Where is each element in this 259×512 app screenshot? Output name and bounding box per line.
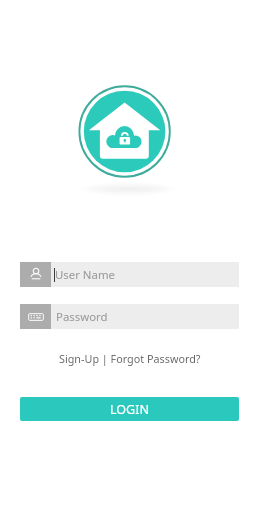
button[interactable]: User: [20, 262, 239, 287]
other: Password: [20, 304, 51, 329]
staticText: LOGIN: [110, 401, 149, 418]
staticText: User Name: [55, 267, 115, 283]
staticText: Password: [56, 309, 108, 325]
button[interactable]: Password: [20, 304, 239, 329]
button[interactable]: LOGIN: [20, 397, 239, 421]
button[interactable]: Sign-Up | Forgot Password?: [59, 351, 201, 366]
other: User: [20, 262, 51, 287]
